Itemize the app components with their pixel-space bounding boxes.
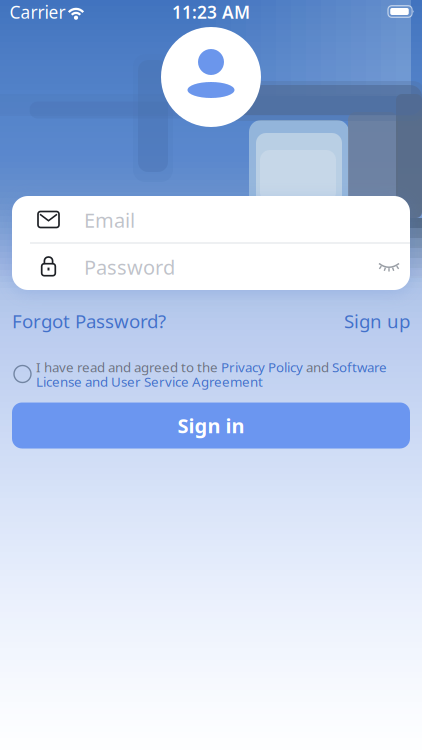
- staticText: Carrier: [9, 0, 65, 23]
- button[interactable]: Privacy Policy: [221, 358, 303, 376]
- staticText: Privacy Policy: [221, 358, 303, 376]
- button[interactable]: Forgot Password?: [12, 309, 252, 333]
- staticText: Software: [332, 358, 387, 376]
- button[interactable]: Password: [12, 243, 410, 290]
- staticText: and: [303, 358, 332, 376]
- button[interactable]: Show password: [374, 255, 404, 279]
- staticText: Password: [84, 254, 175, 280]
- button[interactable]: Email: [12, 196, 410, 243]
- staticText: Sign up: [344, 309, 410, 333]
- button[interactable]: Sign in: [12, 402, 410, 448]
- button[interactable]: Agree to terms: [14, 365, 31, 382]
- staticText: Sign in: [177, 412, 244, 439]
- button[interactable]: Sign up: [170, 309, 410, 333]
- button[interactable]: Software: [332, 358, 387, 376]
- staticText: 11:23 AM: [172, 0, 250, 23]
- staticText: Forgot Password?: [12, 309, 166, 333]
- staticText: I have read and agreed to the: [36, 358, 221, 376]
- staticText: Email: [84, 207, 135, 233]
- button[interactable]: License and User Service Agreement: [36, 373, 422, 390]
- staticText: License and User Service Agreement: [36, 373, 263, 390]
